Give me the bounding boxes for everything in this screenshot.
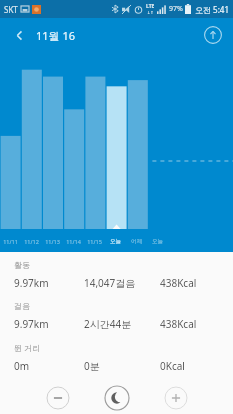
staticText: 어제 xyxy=(131,238,142,245)
staticText: 오늘 xyxy=(152,238,163,245)
staticText: ↓↑ xyxy=(147,10,154,15)
staticText: 11/13 xyxy=(45,238,60,245)
staticText: 0Kcal xyxy=(160,359,219,373)
button[interactable]: Sleep mode xyxy=(104,385,130,411)
staticText: 11/12 xyxy=(24,238,39,245)
button[interactable]: Decrease xyxy=(46,386,70,410)
staticText: 9.97km xyxy=(14,317,84,331)
staticText: 11/15 xyxy=(87,238,102,245)
button[interactable]: 활동 xyxy=(14,258,219,299)
button[interactable]: 오늘 xyxy=(147,230,168,252)
staticText: 9.97km xyxy=(14,276,84,290)
staticText: 11월 16 xyxy=(36,28,76,43)
staticText: 뛴 거리 xyxy=(14,342,41,353)
staticText: SKT xyxy=(4,4,18,15)
staticText: 14,047걸음 xyxy=(84,276,160,290)
button[interactable]: 오늘 xyxy=(105,230,126,252)
button[interactable]: 11/14 xyxy=(63,230,84,252)
staticText: 11/14 xyxy=(66,238,81,245)
button[interactable]: 걸음 xyxy=(14,299,219,340)
staticText: 2시간44분 xyxy=(84,317,160,331)
button[interactable]: 11/11 xyxy=(0,230,21,252)
button[interactable]: 뛴 거리 xyxy=(14,340,219,382)
button[interactable]: 어제 xyxy=(126,230,147,252)
staticText: 걸음 xyxy=(14,301,30,311)
button[interactable]: 11/15 xyxy=(84,230,105,252)
staticText: 11/11 xyxy=(3,238,18,245)
staticText: 오늘 xyxy=(110,238,121,245)
staticText: 0분 xyxy=(84,359,160,373)
staticText: 97% xyxy=(169,4,183,14)
button[interactable]: Back xyxy=(8,24,30,46)
staticText: 오전 5:41 xyxy=(195,4,229,15)
staticText: 438Kcal xyxy=(160,276,219,290)
button[interactable]: 11/12 xyxy=(21,230,42,252)
button[interactable]: 11/13 xyxy=(42,230,63,252)
button[interactable]: Increase xyxy=(164,386,188,410)
staticText: 활동 xyxy=(14,260,30,270)
staticText: 0m xyxy=(14,359,84,373)
button[interactable]: Share xyxy=(201,23,225,47)
staticText: LTE xyxy=(146,3,155,10)
staticText: 438Kcal xyxy=(160,317,219,331)
